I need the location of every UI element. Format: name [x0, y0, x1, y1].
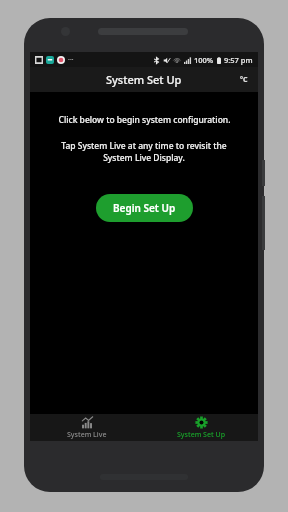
button[interactable]: Begin Set Up — [96, 194, 193, 222]
staticText: Tap System Live at any time to revisit t… — [61, 140, 227, 164]
staticText: ··· — [68, 55, 74, 65]
staticText: 100% — [194, 55, 214, 65]
staticText: Begin Set Up — [113, 201, 176, 215]
button[interactable]: System Set Up — [144, 414, 258, 441]
staticText: System Live — [67, 430, 107, 440]
button[interactable]: °C — [236, 71, 252, 89]
staticText: 9:57 pm — [224, 55, 253, 65]
button[interactable]: System Live — [30, 414, 144, 441]
staticText: Click below to begin system configuratio… — [58, 114, 231, 126]
staticText: System Set Up — [106, 72, 182, 87]
staticText: System Set Up — [177, 430, 225, 440]
staticText: °C — [240, 75, 248, 85]
